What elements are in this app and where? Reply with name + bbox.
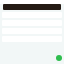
button[interactable]: [3, 4, 61, 10]
button[interactable]: [56, 55, 62, 61]
